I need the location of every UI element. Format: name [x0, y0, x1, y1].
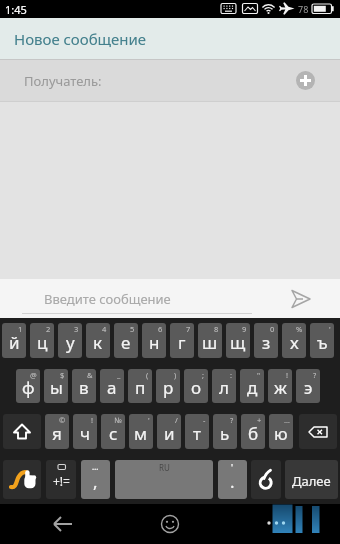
staticText: н — [149, 331, 160, 354]
staticText: , — [93, 470, 98, 493]
staticText: 9 — [242, 324, 247, 334]
staticText: 1 — [18, 324, 23, 334]
staticText: % — [296, 324, 303, 334]
button[interactable] — [296, 71, 315, 90]
button[interactable] — [251, 460, 281, 499]
staticText: 78 — [298, 3, 309, 15]
button[interactable]: ж — [268, 369, 292, 403]
staticText: ц — [37, 331, 48, 354]
staticText: е — [121, 331, 131, 354]
staticText: ' — [329, 324, 331, 334]
button[interactable]: н — [142, 323, 166, 358]
button[interactable] — [3, 460, 41, 499]
staticText: х — [290, 331, 299, 354]
button[interactable]: ъ — [310, 323, 334, 358]
button[interactable]: п — [128, 369, 152, 403]
button[interactable] — [289, 287, 313, 311]
button[interactable] — [155, 509, 185, 539]
staticText: о — [191, 376, 202, 399]
staticText: Введите сообщение — [44, 290, 171, 308]
staticText: & — [87, 370, 93, 380]
staticText: 2 — [46, 324, 51, 334]
staticText: б — [248, 422, 259, 445]
staticText: ь — [220, 422, 230, 445]
button[interactable]: с — [101, 414, 125, 449]
staticText: ? — [313, 370, 317, 380]
staticText: ч — [80, 422, 91, 445]
button[interactable]: л — [212, 369, 236, 403]
staticText: с — [109, 422, 118, 445]
staticText: + — [257, 415, 262, 425]
staticText: ! — [91, 415, 94, 425]
staticText: ф — [22, 376, 35, 399]
button[interactable]: э — [296, 369, 320, 403]
button[interactable]: у — [58, 323, 82, 358]
staticText: э — [304, 376, 313, 399]
button[interactable]: й — [2, 323, 26, 358]
button[interactable]: я — [45, 414, 69, 449]
button[interactable]: ч — [73, 414, 97, 449]
staticText: и — [164, 422, 175, 445]
staticText: 3 — [74, 324, 79, 334]
staticText: р — [163, 376, 174, 399]
staticText: 5 — [130, 324, 135, 334]
staticText: ( — [146, 370, 149, 380]
button[interactable]: . — [218, 460, 247, 499]
button[interactable]: г — [170, 323, 194, 358]
button[interactable]: Далее — [285, 460, 338, 499]
staticText: - — [203, 415, 206, 425]
staticText: … — [92, 461, 99, 472]
staticText: ) — [174, 370, 177, 380]
button[interactable]: щ — [226, 323, 250, 358]
staticText: ' — [231, 461, 234, 473]
button[interactable]: е — [114, 323, 138, 358]
button[interactable]: ш — [198, 323, 222, 358]
button[interactable]: и — [157, 414, 181, 449]
staticText: й — [9, 331, 20, 354]
staticText: 8 — [214, 324, 219, 334]
staticText: " — [257, 370, 261, 380]
staticText: ю — [274, 422, 288, 445]
button[interactable]: а — [100, 369, 124, 403]
button[interactable]: RU — [115, 460, 213, 499]
staticText: ж — [274, 376, 287, 399]
button[interactable]: т — [185, 414, 209, 449]
staticText: Новое сообщение — [14, 29, 147, 49]
button[interactable]: д — [240, 369, 264, 403]
button[interactable]: б — [241, 414, 265, 449]
button[interactable]: ь — [213, 414, 237, 449]
staticText: ! — [286, 370, 289, 380]
staticText: 1:45 — [5, 2, 27, 17]
button[interactable] — [299, 414, 337, 449]
staticText: _ — [117, 370, 121, 380]
button[interactable]: , — [81, 460, 110, 499]
button[interactable]: ц — [30, 323, 54, 358]
staticText: / — [175, 415, 178, 425]
staticText: л — [219, 376, 229, 399]
staticText: $ — [60, 370, 65, 380]
staticText: @ — [30, 370, 37, 380]
button[interactable]: з — [254, 323, 278, 358]
button[interactable]: в — [72, 369, 96, 403]
button[interactable]: м — [129, 414, 153, 449]
button[interactable]: ы — [44, 369, 68, 403]
button[interactable]: х — [282, 323, 306, 358]
staticText: 7 — [186, 324, 191, 334]
button[interactable]: р — [156, 369, 180, 403]
staticText: а — [107, 376, 117, 399]
staticText: м — [134, 422, 148, 445]
staticText: 6 — [158, 324, 163, 334]
button[interactable] — [48, 509, 78, 539]
staticText: з — [262, 331, 271, 354]
button[interactable]: ф — [16, 369, 40, 403]
staticText: д — [247, 376, 258, 399]
button[interactable]: +!= — [46, 460, 76, 499]
staticText: ? — [230, 415, 234, 425]
button[interactable]: ю — [269, 414, 293, 449]
button[interactable]: к — [86, 323, 110, 358]
staticText: +!= — [53, 473, 70, 489]
button[interactable]: о — [184, 369, 208, 403]
staticText: я — [52, 422, 62, 445]
button[interactable] — [3, 414, 41, 449]
staticText: ш — [202, 331, 218, 354]
